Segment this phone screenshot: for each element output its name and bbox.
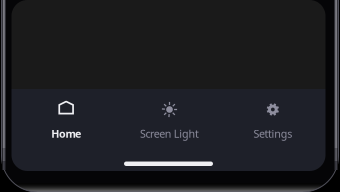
staticText: Home: [51, 126, 81, 141]
staticText: Settings: [253, 126, 292, 141]
button[interactable]: Settings: [221, 98, 324, 139]
button[interactable]: Screen Light: [118, 98, 221, 139]
staticText: Screen Light: [140, 126, 199, 141]
button[interactable]: Home: [14, 98, 118, 139]
